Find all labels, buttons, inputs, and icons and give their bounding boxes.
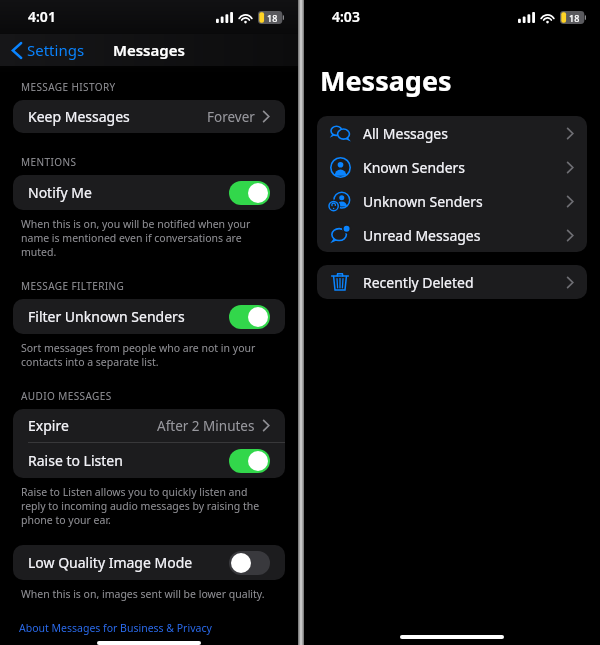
button[interactable]: Settings (8, 36, 89, 64)
button[interactable]: Raise to Listen (13, 443, 285, 478)
staticText: Forever (207, 108, 255, 126)
staticText: MENTIONS (21, 155, 77, 169)
staticText: Settings (27, 40, 85, 60)
button[interactable]: About Messages for Business & Privacy (19, 621, 212, 635)
staticText: Known Senders (363, 158, 466, 177)
button[interactable]: Recently Deleted (317, 265, 587, 299)
button[interactable]: Unread Messages (317, 218, 587, 252)
button[interactable]: Low Quality Image Mode (229, 551, 270, 575)
button[interactable]: Expire (13, 409, 285, 442)
button[interactable]: Filter Unknown Senders (229, 305, 270, 329)
staticText: Low Quality Image Mode (28, 553, 193, 572)
staticText: Expire (28, 416, 69, 435)
button[interactable]: Keep Messages (13, 100, 285, 133)
staticText: Recently Deleted (363, 273, 474, 292)
button[interactable]: Filter Unknown Senders (13, 299, 285, 334)
staticText: MESSAGE HISTORY (21, 80, 116, 94)
button[interactable]: Unknown Senders (317, 184, 587, 218)
staticText: 18 (267, 12, 278, 24)
staticText: After 2 Minutes (157, 417, 255, 435)
button[interactable]: Notify Me (13, 175, 285, 210)
staticText: Filter Unknown Senders (28, 307, 185, 326)
staticText: Notify Me (28, 183, 92, 202)
staticText: When this is on, images sent will be low… (21, 587, 265, 601)
button[interactable]: Known Senders (317, 150, 587, 184)
button[interactable]: Raise to Listen (229, 449, 270, 473)
staticText: 4:03 (332, 7, 360, 26)
staticText: Raise to Listen allows you to quickly li… (21, 485, 268, 527)
button[interactable]: All Messages (317, 116, 587, 150)
staticText: 18 (569, 12, 580, 24)
staticText: Unknown Senders (363, 192, 483, 211)
staticText: Messages (113, 40, 185, 60)
staticText: 4:01 (28, 7, 56, 26)
staticText: Unread Messages (363, 226, 481, 245)
staticText: AUDIO MESSAGES (21, 389, 112, 403)
staticText: When this is on, you will be notified wh… (21, 217, 268, 259)
staticText: Sort messages from people who are not in… (21, 341, 268, 369)
staticText: Raise to Listen (28, 451, 123, 470)
staticText: All Messages (363, 124, 448, 143)
staticText: MESSAGE FILTERING (21, 279, 125, 293)
button[interactable]: Notify Me (229, 181, 270, 205)
button[interactable]: Low Quality Image Mode (13, 545, 285, 580)
staticText: Messages (320, 62, 452, 99)
staticText: Keep Messages (28, 107, 130, 126)
